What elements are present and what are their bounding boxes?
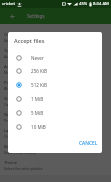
staticText: Cache and media files <box>4 102 41 107</box>
staticText: CANCEL <box>79 140 98 147</box>
button[interactable]: 10 MiB <box>8 120 102 134</box>
staticText: Language <box>4 128 23 133</box>
staticText: 256 KiB <box>31 68 48 74</box>
button[interactable]: Back <box>6 10 18 22</box>
button[interactable]: Transfer <box>0 47 111 60</box>
staticText: Storage <box>4 96 19 101</box>
staticText: Blocked contacts <box>4 86 33 91</box>
button[interactable]: CANCEL <box>75 137 102 150</box>
button[interactable]: Storage <box>0 95 111 108</box>
button[interactable]: Never <box>8 51 102 65</box>
staticText: Network <box>4 112 21 117</box>
staticText: Choose your language <box>4 134 43 139</box>
staticText: Transfer <box>4 48 20 53</box>
staticText: Settings <box>27 13 45 19</box>
button[interactable]: 1 MiB <box>8 92 102 106</box>
staticText: Never <box>31 55 44 61</box>
staticText: 8:34 AM <box>93 1 109 7</box>
button[interactable]: Privacy <box>0 79 111 92</box>
button[interactable]: 512 KiB <box>8 78 102 92</box>
staticText: 1 MiB <box>31 96 44 102</box>
button[interactable]: Account <box>0 63 111 76</box>
staticText: Export chat history <box>4 150 36 155</box>
button[interactable]: Theme <box>0 159 111 172</box>
staticText: 10 MiB <box>31 124 46 130</box>
staticText: 512 KiB <box>31 82 48 88</box>
staticText: 5 MiB <box>31 110 44 116</box>
staticText: Notification and sounds <box>4 38 45 43</box>
staticText: Backup <box>4 144 18 149</box>
button[interactable]: 256 KiB <box>8 64 102 78</box>
button[interactable]: 5 MiB <box>8 106 102 120</box>
staticText: Account <box>4 64 20 69</box>
staticText: Theme <box>4 160 17 165</box>
staticText: Chat settings <box>4 32 29 37</box>
staticText: Manage your profile <box>4 70 39 75</box>
staticText: Privacy <box>4 80 18 85</box>
staticText: cricket <box>2 1 15 7</box>
staticText: Auto accept incoming <box>4 54 41 59</box>
staticText: Accept files <box>14 37 45 45</box>
button[interactable]: Language <box>0 127 111 140</box>
staticText: 45% <box>79 1 88 7</box>
button[interactable]: Chat settings <box>0 31 111 44</box>
button[interactable]: Backup <box>0 143 111 156</box>
staticText: Proxy and ports <box>4 118 31 123</box>
staticText: Select the color palette <box>4 166 43 171</box>
button[interactable]: Network <box>0 111 111 124</box>
